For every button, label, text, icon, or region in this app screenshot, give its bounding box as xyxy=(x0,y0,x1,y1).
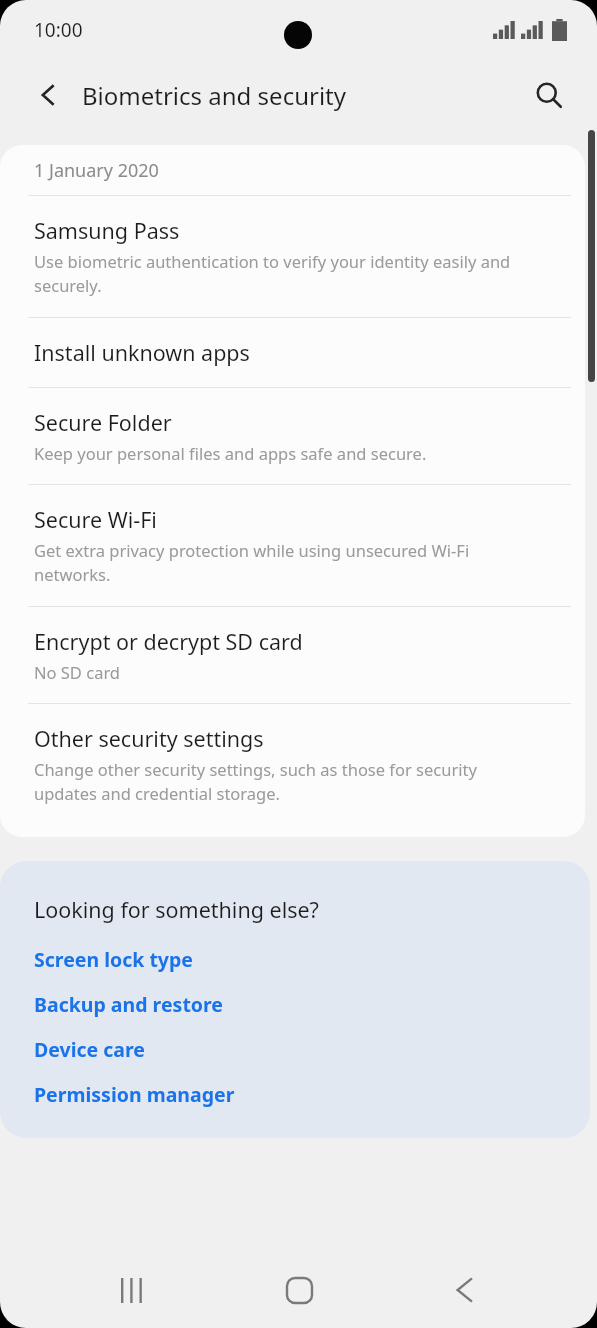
button[interactable]: Secure Folder xyxy=(0,388,585,484)
button[interactable]: Encrypt or decrypt SD card xyxy=(0,607,585,703)
button[interactable]: Permission manager xyxy=(34,1081,235,1108)
button[interactable]: Back xyxy=(431,1257,497,1323)
button[interactable]: Other security settings xyxy=(0,704,585,825)
button[interactable]: Back xyxy=(22,69,74,121)
button[interactable]: Device care xyxy=(34,1036,145,1063)
staticText: Change other security settings, such as … xyxy=(34,758,525,805)
button[interactable]: Install unknown apps xyxy=(0,318,585,387)
staticText: 1 January 2020 xyxy=(34,158,159,183)
staticText: Device care xyxy=(34,1036,145,1063)
button[interactable]: Search xyxy=(523,69,575,121)
staticText: Backup and restore xyxy=(34,991,223,1018)
button[interactable]: Backup and restore xyxy=(34,991,223,1018)
staticText: Encrypt or decrypt SD card xyxy=(34,627,303,656)
button[interactable]: Screen lock type xyxy=(34,946,193,973)
button[interactable]: Secure Wi-Fi xyxy=(0,485,585,606)
staticText: Secure Folder xyxy=(34,408,172,437)
staticText: Get extra privacy protection while using… xyxy=(34,539,525,586)
staticText: Permission manager xyxy=(34,1081,235,1108)
staticText: Screen lock type xyxy=(34,946,193,973)
staticText: Looking for something else? xyxy=(34,895,319,924)
staticText: Other security settings xyxy=(34,724,264,753)
staticText: Use biometric authentication to verify y… xyxy=(34,250,525,297)
button[interactable]: Home xyxy=(266,1257,332,1323)
staticText: Secure Wi-Fi xyxy=(34,505,157,534)
button[interactable]: Recent apps xyxy=(100,1257,166,1323)
staticText: Biometrics and security xyxy=(82,79,346,112)
staticText: Install unknown apps xyxy=(34,338,250,367)
staticText: Keep your personal files and apps safe a… xyxy=(34,442,427,464)
staticText: No SD card xyxy=(34,661,121,683)
staticText: Samsung Pass xyxy=(34,216,180,245)
staticText: 10:00 xyxy=(34,17,83,43)
button[interactable]: Samsung Pass xyxy=(0,196,585,317)
